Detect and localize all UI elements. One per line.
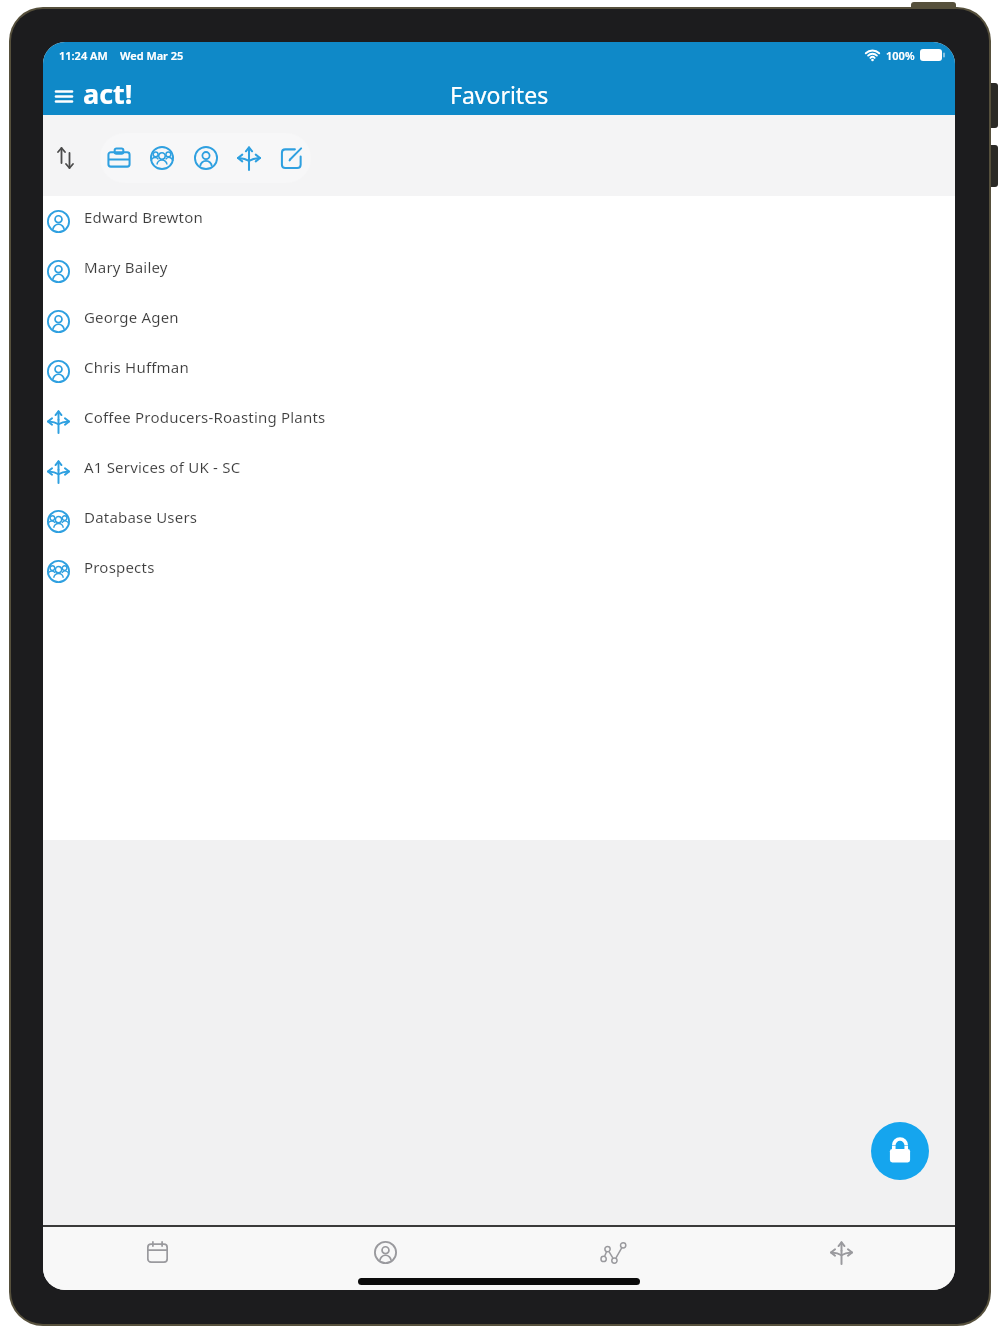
staticText: Mary Bailey: [84, 257, 168, 277]
staticText: Coffee Producers-Roasting Plants: [84, 407, 326, 427]
button[interactable]: [147, 143, 177, 173]
button[interactable]: Edward Brewton: [43, 196, 955, 246]
staticText: Database Users: [84, 507, 198, 527]
staticText: 11:24 AM: [59, 48, 108, 63]
button[interactable]: [871, 1122, 929, 1180]
button[interactable]: Mary Bailey: [43, 246, 955, 296]
button[interactable]: Prospects: [43, 546, 955, 596]
button[interactable]: [191, 143, 221, 173]
staticText: Favorites: [450, 79, 549, 110]
button[interactable]: [271, 1230, 499, 1274]
button[interactable]: [499, 1230, 727, 1274]
button[interactable]: [56, 90, 72, 103]
staticText: act!: [83, 75, 133, 112]
button[interactable]: George Agen: [43, 296, 955, 346]
staticText: Chris Huffman: [84, 357, 189, 377]
staticText: Wed Mar 25: [120, 48, 184, 63]
button[interactable]: [727, 1230, 955, 1274]
staticText: George Agen: [84, 307, 179, 327]
button[interactable]: Database Users: [43, 496, 955, 546]
button[interactable]: [104, 143, 134, 173]
button[interactable]: Chris Huffman: [43, 346, 955, 396]
staticText: 100%: [886, 48, 915, 63]
button[interactable]: [234, 143, 264, 173]
button[interactable]: [57, 146, 75, 170]
staticText: A1 Services of UK - SC: [84, 457, 241, 477]
button[interactable]: A1 Services of UK - SC: [43, 446, 955, 496]
button[interactable]: [277, 143, 307, 173]
button[interactable]: [43, 1230, 271, 1274]
staticText: Edward Brewton: [84, 207, 203, 227]
staticText: Prospects: [84, 557, 155, 577]
button[interactable]: Coffee Producers-Roasting Plants: [43, 396, 955, 446]
